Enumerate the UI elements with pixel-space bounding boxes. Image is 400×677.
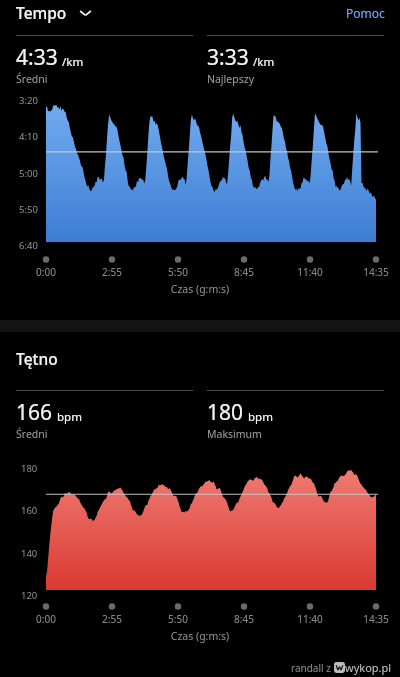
staticText: 0:00 xyxy=(36,265,56,279)
staticText: randall z xyxy=(291,661,334,675)
staticText: 4:10 xyxy=(19,130,38,143)
staticText: 8:45 xyxy=(234,265,254,279)
staticText: 2:55 xyxy=(102,265,122,279)
button[interactable]: Tempo xyxy=(16,2,93,23)
staticText: 166 xyxy=(16,398,53,427)
staticText: 5:50 xyxy=(168,612,188,626)
button[interactable]: 166 xyxy=(16,390,193,441)
staticText: 8:45 xyxy=(234,612,254,626)
button[interactable]: 180 xyxy=(207,390,384,441)
staticText: 11:40 xyxy=(297,612,323,626)
button[interactable]: Pomoc xyxy=(344,3,387,23)
staticText: 180 xyxy=(207,398,244,427)
staticText: Średni xyxy=(16,427,48,441)
other: Rozwiń wybór wykresu xyxy=(78,5,93,20)
staticText: 180 xyxy=(21,462,38,475)
staticText: Maksimum xyxy=(207,427,262,441)
staticText: Czas (g:m:s) xyxy=(0,282,400,296)
staticText: Tempo xyxy=(16,2,67,23)
staticText: /km xyxy=(62,54,84,70)
staticText: 5:50 xyxy=(168,265,188,279)
staticText: bpm xyxy=(57,409,82,425)
button[interactable]: 4:33 xyxy=(16,35,193,86)
staticText: 5:50 xyxy=(19,203,38,216)
staticText: /km xyxy=(253,54,275,70)
button[interactable]: 3:33 xyxy=(207,35,384,86)
staticText: 0:00 xyxy=(36,612,56,626)
staticText: 14:35 xyxy=(363,265,389,279)
button[interactable]: Tętno xyxy=(0,348,400,369)
staticText: 120 xyxy=(21,589,38,602)
staticText: Pomoc xyxy=(346,5,385,21)
staticText: 3:33 xyxy=(207,43,249,72)
staticText: Tętno xyxy=(16,348,58,369)
staticText: 160 xyxy=(21,504,38,517)
staticText: 14:35 xyxy=(363,612,389,626)
staticText: 5:00 xyxy=(19,167,38,180)
staticText: bpm xyxy=(248,409,273,425)
staticText: 6:40 xyxy=(19,239,38,252)
staticText: 2:55 xyxy=(102,612,122,626)
staticText: wykop.pl xyxy=(345,660,392,675)
staticText: 3:20 xyxy=(19,94,38,107)
staticText: 140 xyxy=(21,547,38,560)
staticText: Najlepszy xyxy=(207,72,254,86)
staticText: Czas (g:m:s) xyxy=(0,629,400,643)
staticText: 11:40 xyxy=(297,265,323,279)
staticText: Średni xyxy=(16,72,48,86)
staticText: 4:33 xyxy=(16,43,58,72)
